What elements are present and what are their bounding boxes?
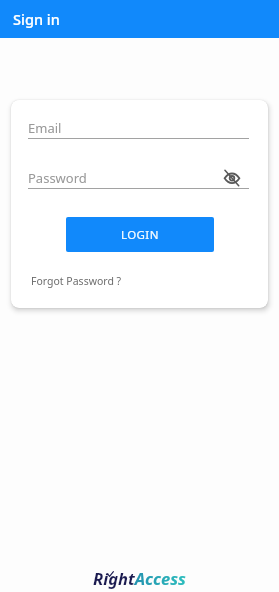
button[interactable]: Password (28, 168, 249, 188)
button[interactable]: Forgot Password ? (31, 274, 122, 288)
staticText: Sign in (13, 9, 60, 29)
staticText: LOGIN (121, 227, 159, 243)
button[interactable]: Email (28, 118, 249, 139)
button[interactable]: LOGIN (66, 217, 214, 252)
staticText: RightAccess (93, 567, 186, 589)
button[interactable]: Show password (222, 168, 242, 188)
staticText: Forgot Password ? (31, 274, 122, 288)
staticText: Email (28, 119, 62, 137)
staticText: Password (28, 169, 87, 187)
